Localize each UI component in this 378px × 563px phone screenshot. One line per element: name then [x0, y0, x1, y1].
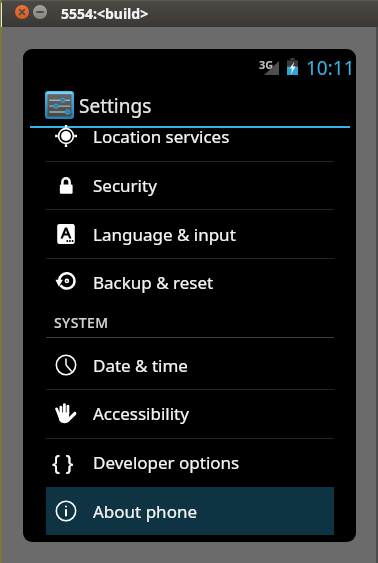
button[interactable]: Close window [15, 5, 29, 19]
staticText: 10:11 [306, 55, 355, 81]
staticText: About phone [93, 500, 198, 523]
staticText: Developer options [93, 451, 240, 474]
staticText: Accessibility [93, 402, 189, 425]
staticText: { } [52, 449, 74, 478]
staticText: Date & time [93, 354, 188, 377]
staticText: 3G [259, 57, 274, 72]
button[interactable]: Security [23, 162, 356, 210]
button[interactable]: Accessibility [23, 390, 356, 438]
staticText: SYSTEM [54, 313, 109, 332]
button[interactable]: Language & input [23, 210, 356, 258]
staticText: Security [93, 174, 157, 197]
button[interactable]: Backup & reset [23, 259, 356, 307]
staticText: Language & input [93, 223, 236, 246]
button[interactable]: Date & time [23, 341, 356, 389]
button[interactable]: { } [23, 439, 356, 487]
staticText: Location services [93, 125, 230, 148]
button[interactable]: About phone [46, 487, 334, 535]
staticText: Backup & reset [93, 271, 214, 294]
staticText: Settings [79, 93, 152, 119]
staticText: 5554:<build> [61, 4, 149, 23]
button[interactable]: Location services [23, 128, 356, 161]
button[interactable]: Minimize window [33, 5, 47, 19]
